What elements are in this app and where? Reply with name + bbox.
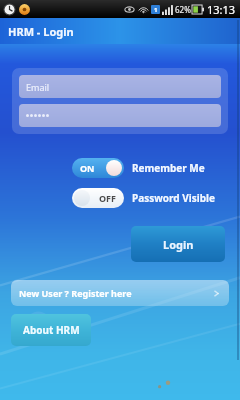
staticText: About HRM — [23, 323, 80, 337]
button[interactable]: About HRM — [11, 314, 91, 346]
staticText: Remember Me — [132, 161, 205, 175]
button[interactable]: Toggle on — [72, 158, 124, 178]
staticText: OFF — [99, 192, 117, 204]
staticText: Password Visible — [132, 191, 216, 205]
button[interactable]: New User ? Register here — [11, 280, 229, 306]
staticText: New User ? Register here — [19, 287, 132, 299]
staticText: 62% — [175, 4, 191, 15]
staticText: Email — [26, 81, 50, 93]
button[interactable]: Email — [19, 75, 221, 98]
staticText: HRM - Login — [8, 24, 74, 39]
staticText: 13:13 — [207, 2, 236, 17]
button[interactable]: Login — [131, 226, 225, 262]
staticText: 1 — [154, 6, 158, 14]
staticText: Login — [163, 237, 194, 252]
button[interactable] — [19, 104, 221, 127]
button[interactable]: Toggle off — [72, 188, 124, 208]
staticText: ON — [80, 162, 95, 174]
